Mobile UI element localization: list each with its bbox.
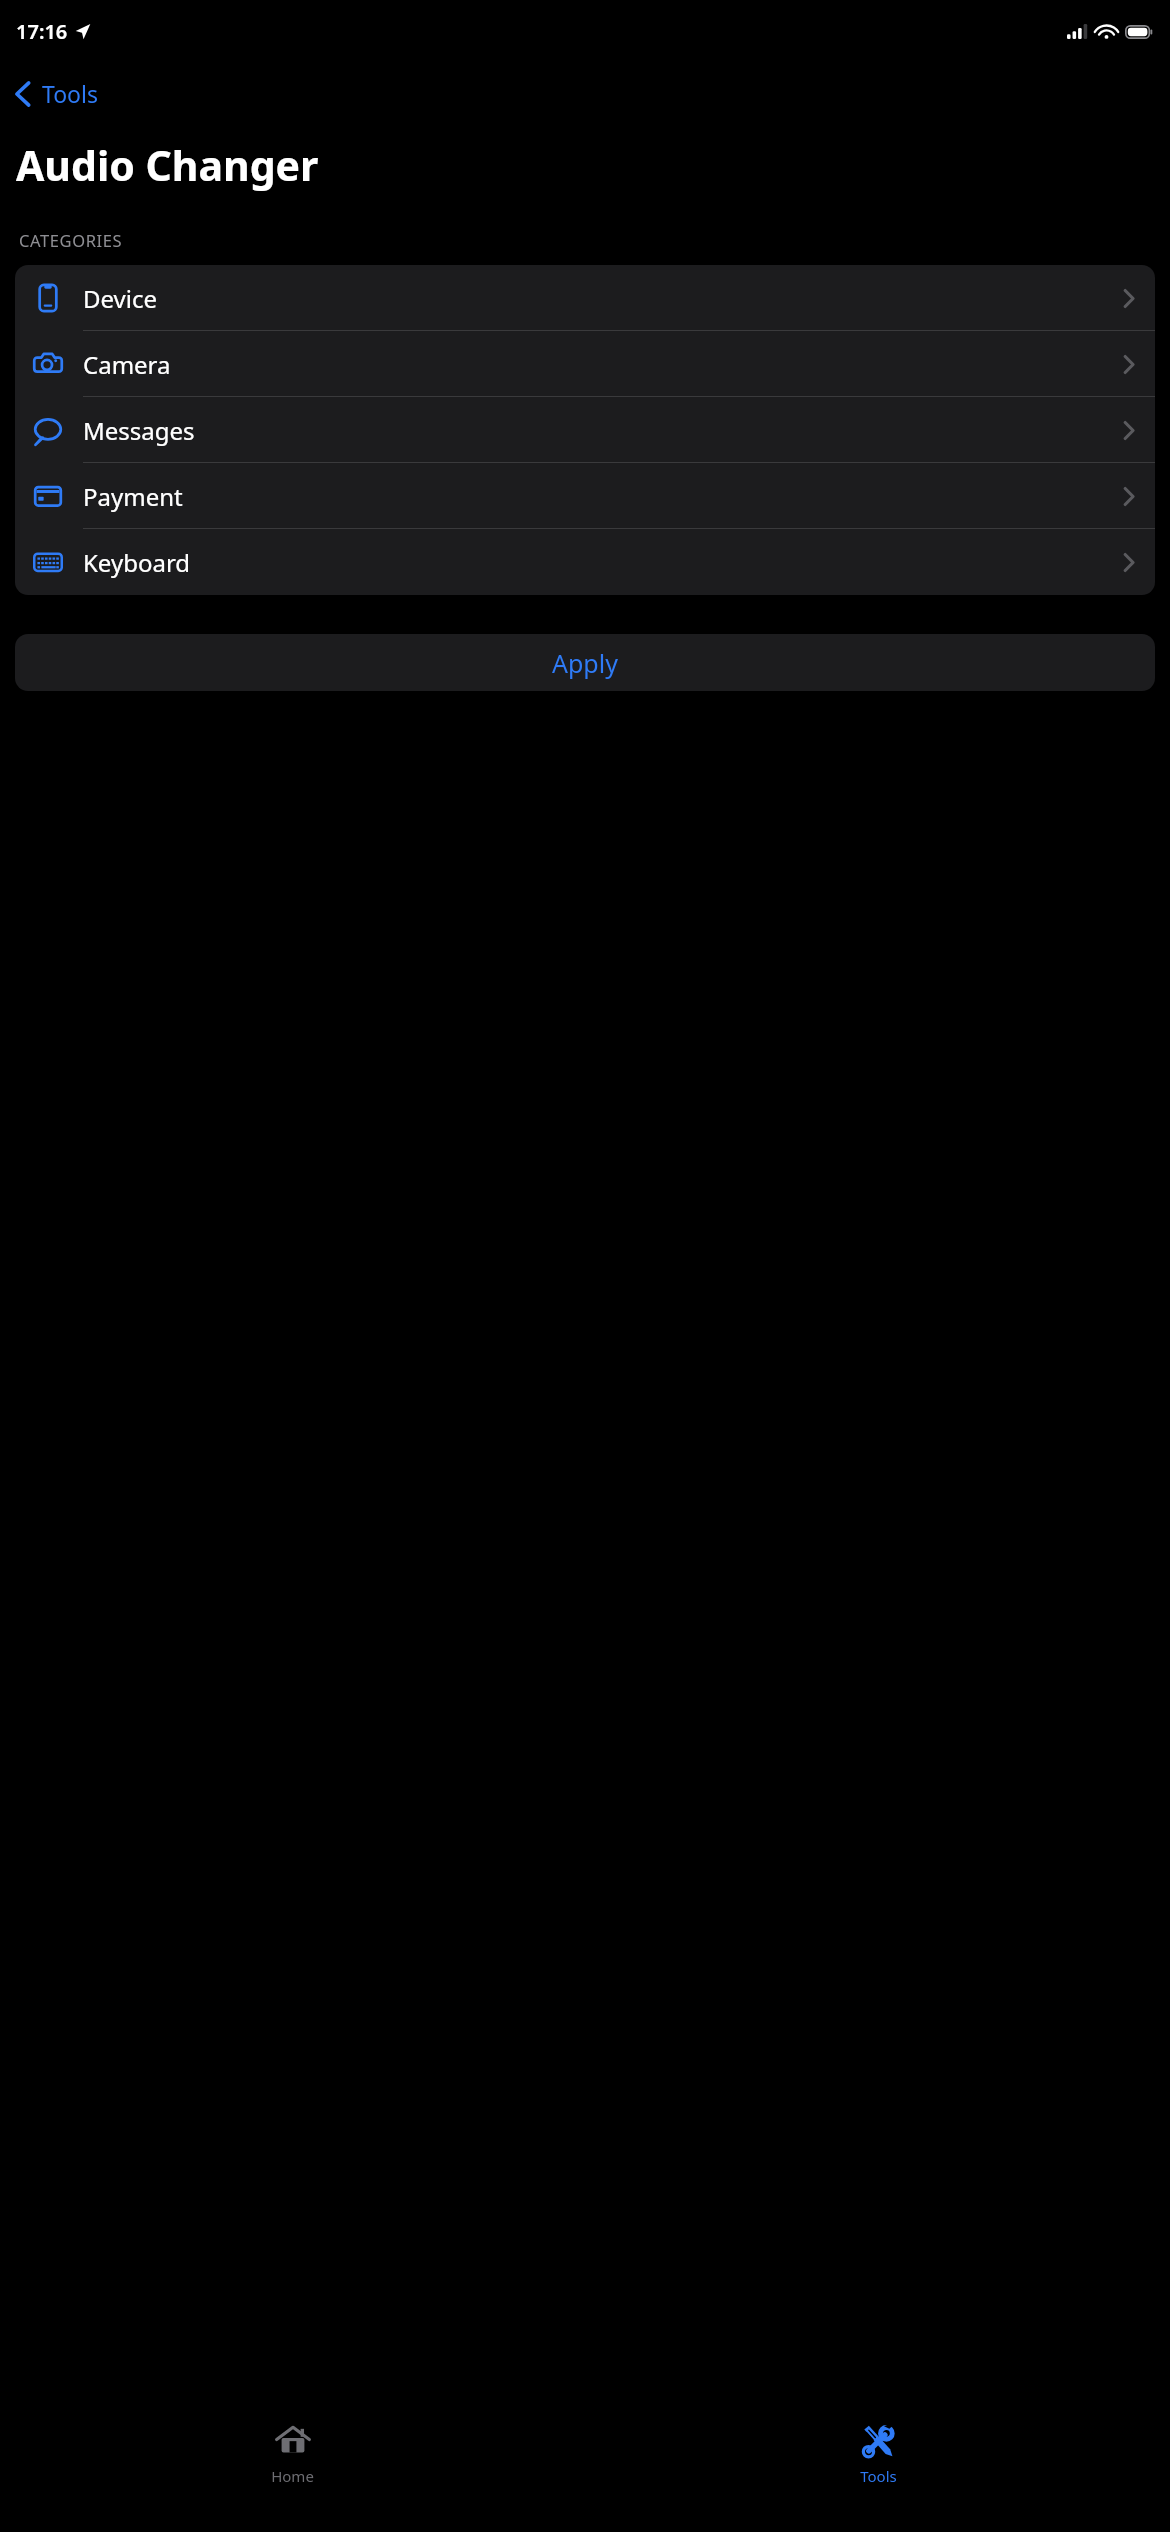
staticText: Audio Changer [16, 137, 319, 193]
staticText: Tools [860, 2466, 897, 2486]
staticText: 17:16 [16, 18, 68, 45]
staticText: Home [271, 2466, 314, 2486]
staticText: Apply [552, 646, 618, 680]
staticText: Tools [42, 78, 98, 109]
button[interactable]: Messages [15, 397, 1155, 463]
staticText: CATEGORIES [19, 229, 123, 251]
button[interactable]: Keyboard [15, 529, 1155, 595]
staticText: Device [83, 282, 158, 315]
button[interactable]: Camera [15, 331, 1155, 397]
staticText: Payment [83, 480, 183, 513]
staticText: Keyboard [83, 546, 191, 579]
button[interactable]: Apply [15, 634, 1155, 691]
button[interactable]: Tools [8, 72, 110, 115]
button[interactable]: Home tab [0, 2406, 585, 2502]
button[interactable]: Payment [15, 463, 1155, 529]
button[interactable]: Device [15, 265, 1155, 331]
staticText: Messages [83, 414, 195, 447]
button[interactable]: Tools tab [585, 2406, 1170, 2502]
staticText: Camera [83, 348, 171, 381]
